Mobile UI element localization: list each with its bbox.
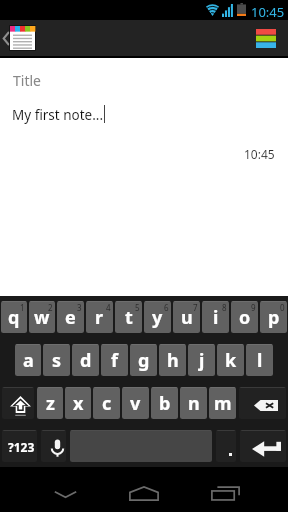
button[interactable]: s [43,344,70,376]
staticText: s [52,348,62,373]
button[interactable]: q [1,301,27,333]
staticText: u [181,305,193,330]
staticText: f [111,348,118,373]
staticText: 7 [193,302,198,313]
button[interactable]: o [231,301,258,333]
button[interactable]: m [209,387,236,419]
staticText: p [268,305,280,330]
button[interactable]: Enter [240,430,286,462]
staticText: l [257,348,263,373]
staticText: a [23,348,34,373]
staticText: 2 [48,302,53,313]
staticText: c [102,391,112,416]
staticText: x [73,391,84,416]
button[interactable]: l [246,344,273,376]
button[interactable]: ?123 [2,430,37,462]
button[interactable]: Voice input [41,430,66,462]
staticText: Title [13,71,41,90]
button[interactable]: n [180,387,207,419]
button[interactable]: z [37,387,63,419]
staticText: 1 [20,302,25,313]
button[interactable]: v [122,387,149,419]
staticText: 5 [135,302,140,313]
button[interactable]: u [173,301,200,333]
staticText: g [138,348,150,373]
button[interactable]: Delete [239,387,286,419]
staticText: e [65,305,76,330]
button[interactable]: g [130,344,157,376]
button[interactable]: x [65,387,91,419]
button[interactable]: e [57,301,84,333]
staticText: 4 [106,302,111,313]
button[interactable]: j [188,344,215,376]
button[interactable]: Home [113,467,175,512]
button[interactable]: r [86,301,113,333]
button[interactable]: f [101,344,128,376]
staticText: d [80,348,92,373]
staticText: o [239,305,251,330]
staticText: w [34,305,50,330]
staticText: 8 [222,302,227,313]
staticText: k [225,348,237,373]
staticText: n [188,391,200,416]
button[interactable]: Note color [244,20,288,56]
staticText: r [95,305,104,330]
staticText: 9 [251,302,256,313]
staticText: My first note... [12,106,104,124]
staticText: z [46,391,55,416]
button[interactable]: t [115,301,142,333]
button[interactable]: Shift [2,387,34,419]
button[interactable]: c [93,387,120,419]
staticText: 6 [164,302,169,313]
staticText: 10:45 [244,146,275,162]
staticText: v [130,391,141,416]
button[interactable]: b [151,387,178,419]
button[interactable]: d [72,344,99,376]
button[interactable]: y [144,301,171,333]
button[interactable]: h [159,344,186,376]
staticText: 0 [280,302,285,313]
staticText: 3 [77,302,82,313]
button[interactable]: k [217,344,244,376]
staticText: ?123 [8,439,35,455]
button[interactable]: Period [216,430,236,462]
button[interactable]: Recent apps [175,467,288,512]
button[interactable]: w [29,301,55,333]
staticText: b [159,391,171,416]
staticText: q [8,305,20,330]
button[interactable]: Navigate up [0,20,42,56]
button[interactable]: p [260,301,287,333]
staticText: y [152,305,163,330]
staticText: t [125,305,133,330]
staticText: m [214,391,232,416]
staticText: i [213,305,219,330]
staticText: 10:45 [251,3,285,21]
button[interactable]: i [202,301,229,333]
staticText: h [167,348,179,373]
button[interactable]: Hide keyboard [0,467,113,512]
button[interactable]: a [15,344,41,376]
staticText: j [199,348,205,373]
